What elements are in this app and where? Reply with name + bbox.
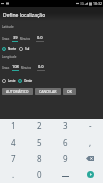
staticText: Define localização [3,12,46,19]
staticText: - [89,120,92,131]
staticText: Minutos [21,66,31,70]
staticText: 3 [63,120,68,131]
staticText: 4 [11,137,16,148]
button[interactable]: 7 [0,150,26,166]
staticText: , [89,137,92,148]
staticText: OK [67,89,72,94]
button[interactable]: 8 [26,150,52,166]
button[interactable]: 3 [52,117,78,133]
staticText: Oeste [24,79,33,83]
button[interactable]: - [77,117,103,133]
button[interactable]: . [0,166,26,182]
button[interactable]: CANCELAR [35,88,61,95]
staticText: 7 [11,153,16,164]
staticText: . [12,169,15,180]
staticText: Latitude [2,25,14,29]
staticText: 0 [37,169,42,180]
staticText: Norte [8,47,17,51]
staticText: 39 [13,35,18,40]
button[interactable]: 0 [26,166,52,182]
button[interactable]: Enter [77,166,103,182]
staticText: Graus [2,37,10,41]
staticText: Graus [2,66,10,70]
button[interactable]: Sul [18,46,31,52]
button[interactable]: 5 [26,134,52,150]
button[interactable]: , [77,134,103,150]
staticText: 108 [12,64,19,69]
staticText: AUTOMÁTICO [6,89,29,94]
staticText: 3G [80,2,84,6]
staticText: Leste [8,79,16,83]
staticText: Sul [25,47,30,51]
staticText: Longitude [2,55,17,59]
button[interactable]: Leste [1,78,17,84]
button[interactable]: Enter [87,171,94,178]
staticText: 5 [37,137,42,148]
staticText: 2 [37,120,42,131]
other: Backspace [86,156,94,161]
staticText: 1 [11,120,16,131]
staticText: 0.0 [38,64,44,69]
button[interactable]: Backspace [77,150,103,166]
button[interactable]: Oeste [17,78,34,84]
staticText: 8 [37,153,42,164]
button[interactable]: 9 [52,150,78,166]
button[interactable]: 2 [26,117,52,133]
button[interactable]: 6 [52,134,78,150]
staticText: 6 [63,137,68,148]
staticText: CANCELAR [39,89,57,94]
button[interactable]: AUTOMÁTICO [2,88,33,95]
staticText: 18:32 [93,1,102,6]
staticText: Minutos [20,37,30,41]
button[interactable]: Norte [1,46,18,52]
staticText: 0.0 [37,35,43,40]
button[interactable]: 1 [0,117,26,133]
button[interactable]: 4 [0,134,26,150]
button[interactable] [52,166,78,182]
staticText: 9 [63,153,68,164]
button[interactable]: OK [63,88,76,95]
